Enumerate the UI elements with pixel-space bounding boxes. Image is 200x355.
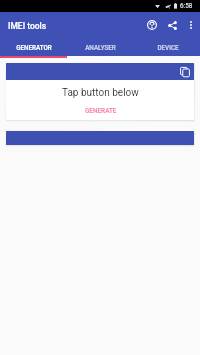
staticText: 6:58 (180, 2, 193, 10)
staticText: IMEI tools (8, 21, 47, 31)
staticText: DEVICE (157, 44, 179, 51)
button[interactable]: Copy (180, 67, 190, 77)
staticText: GENERATOR (16, 44, 52, 51)
button[interactable]: More options (182, 13, 200, 37)
staticText: Tap button below (62, 87, 139, 99)
staticText: GENERATE (85, 107, 117, 115)
button[interactable]: Copy (6, 63, 194, 80)
button[interactable]: GENERATE (79, 106, 123, 116)
button[interactable]: Help (142, 13, 162, 37)
button[interactable]: Share (162, 13, 182, 37)
button[interactable]: GENERATOR (0, 37, 66, 56)
button[interactable]: ANALYSER (66, 37, 133, 56)
staticText: ANALYSER (85, 44, 116, 51)
button[interactable]: DEVICE (133, 37, 200, 56)
